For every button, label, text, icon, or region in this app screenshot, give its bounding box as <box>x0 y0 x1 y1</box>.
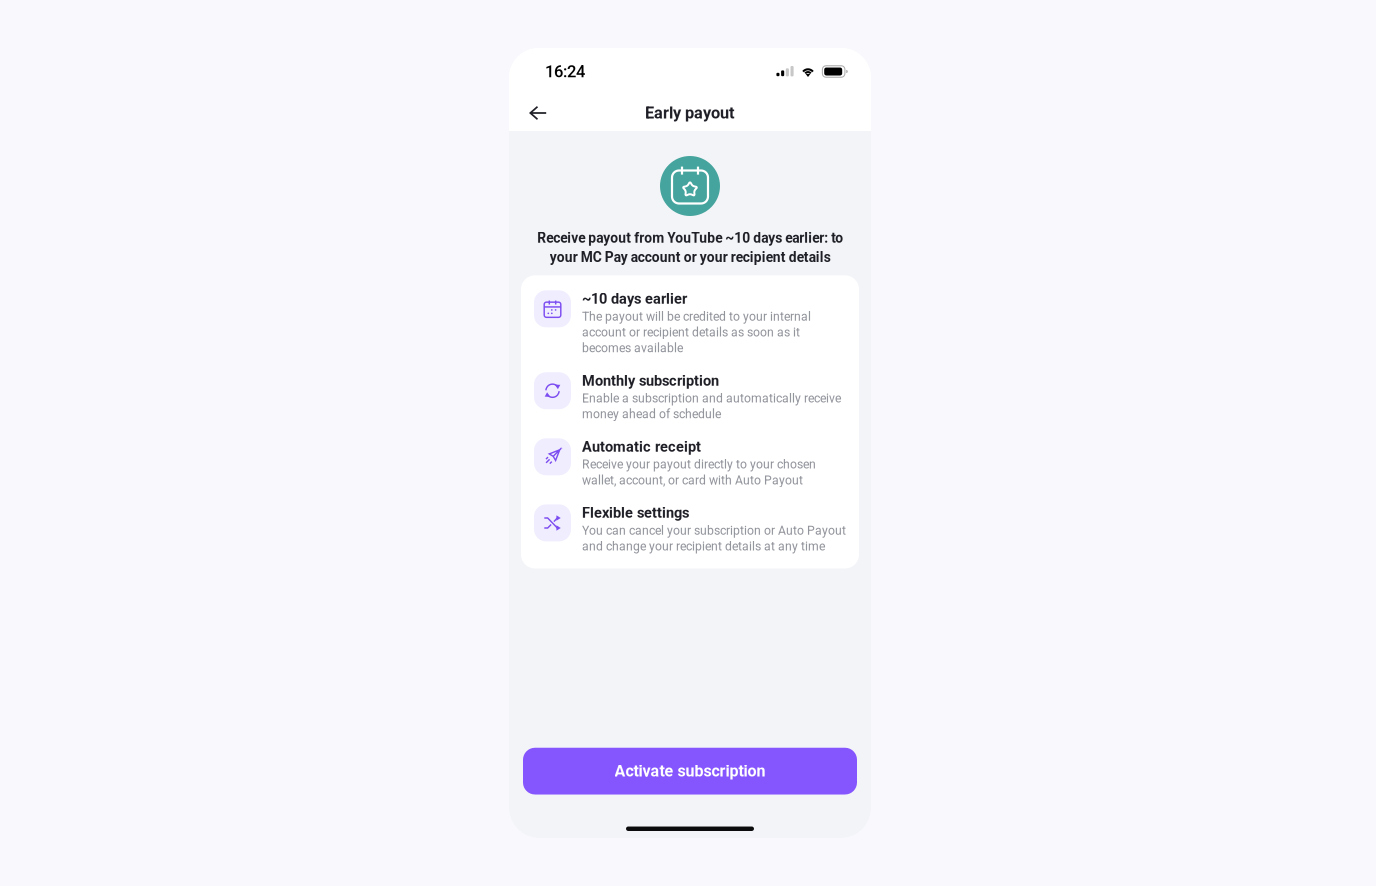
button[interactable]: Activate subscription <box>523 748 857 795</box>
staticText: You can cancel your subscription or Auto… <box>582 523 846 553</box>
staticText: 16:24 <box>545 62 585 81</box>
staticText: Monthly subscription <box>582 372 719 389</box>
staticText: The payout will be credited to your inte… <box>582 309 811 355</box>
staticText: Enable a subscription and automatically … <box>582 391 841 421</box>
staticText: Activate subscription <box>614 762 765 781</box>
staticText: Receive payout from YouTube ~10 days ear… <box>537 230 843 265</box>
staticText: Receive your payout directly to your cho… <box>582 457 816 487</box>
staticText: Automatic receipt <box>582 438 701 455</box>
staticText: ~10 days earlier <box>582 290 687 307</box>
staticText: Early payout <box>645 103 735 122</box>
button[interactable]: Back <box>520 96 556 130</box>
staticText: Flexible settings <box>582 504 689 521</box>
